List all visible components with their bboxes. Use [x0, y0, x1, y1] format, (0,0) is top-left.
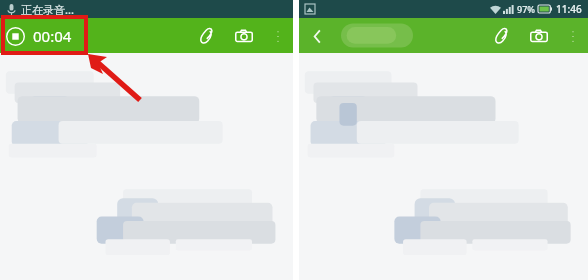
button[interactable]: More options [265, 23, 291, 49]
staticText: 正在录音... [21, 2, 74, 17]
button[interactable]: Camera [229, 21, 259, 51]
staticText: 11:46 [556, 2, 582, 16]
button[interactable]: 00:04 [6, 26, 72, 46]
button[interactable]: More options [560, 23, 586, 49]
staticText: 00:04 [33, 26, 72, 46]
button[interactable]: Camera [524, 21, 554, 51]
button[interactable]: Back [303, 22, 331, 50]
button[interactable]: Attach [486, 21, 516, 51]
staticText: 97% [517, 3, 535, 15]
button[interactable]: Attach [191, 21, 221, 51]
